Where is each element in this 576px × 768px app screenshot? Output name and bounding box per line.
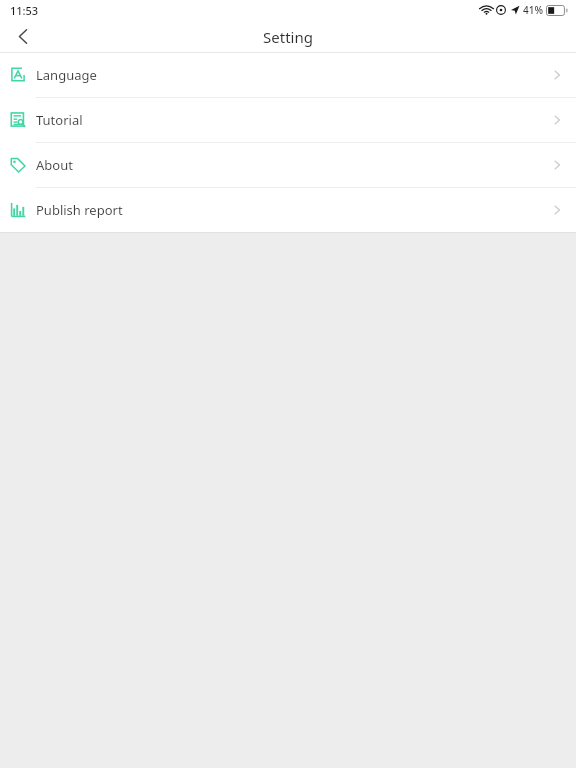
staticText: Language [36, 66, 97, 84]
button[interactable]: Language [0, 53, 576, 97]
button[interactable]: Publish report [0, 188, 576, 232]
button[interactable]: Tutorial [0, 98, 576, 142]
staticText: Publish report [36, 201, 123, 219]
staticText: 41% [523, 3, 543, 17]
staticText: About [36, 156, 73, 174]
button[interactable]: Back [0, 20, 46, 53]
staticText: 11:53 [10, 3, 39, 18]
button[interactable]: About [0, 143, 576, 187]
staticText: Tutorial [36, 111, 83, 129]
staticText: Setting [0, 27, 576, 47]
